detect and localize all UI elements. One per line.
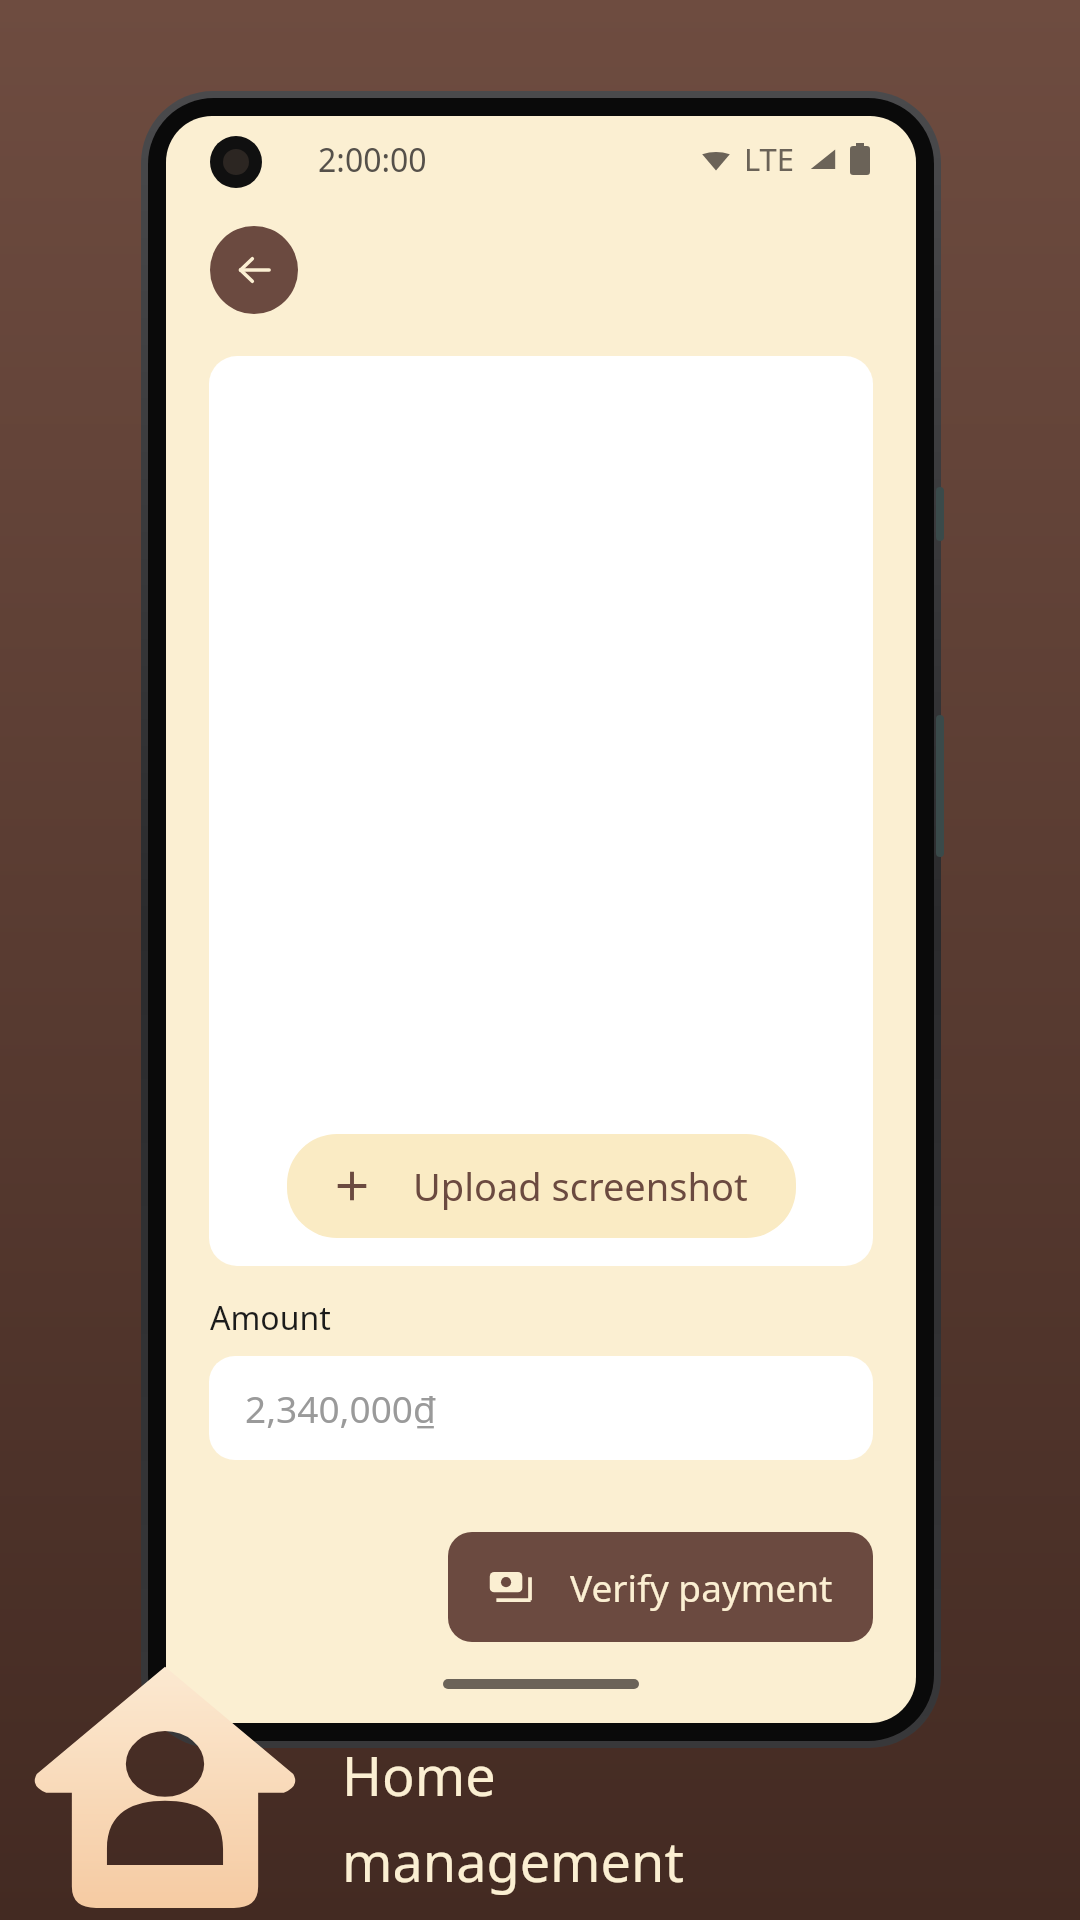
button[interactable]: Verify payment (448, 1532, 873, 1642)
staticText: Home (342, 1738, 496, 1812)
staticText: management (342, 1824, 684, 1898)
staticText: LTE (744, 138, 795, 180)
staticText: Upload screenshot (413, 1160, 748, 1212)
staticText: Amount (210, 1296, 331, 1340)
button[interactable]: Back (210, 226, 298, 314)
button[interactable]: 2,340,000₫ (209, 1356, 873, 1460)
staticText: 2:00:00 (318, 138, 427, 182)
staticText: Verify payment (570, 1562, 833, 1612)
staticText: 2,340,000₫ (245, 1383, 436, 1433)
button[interactable]: Upload screenshot (287, 1134, 796, 1238)
